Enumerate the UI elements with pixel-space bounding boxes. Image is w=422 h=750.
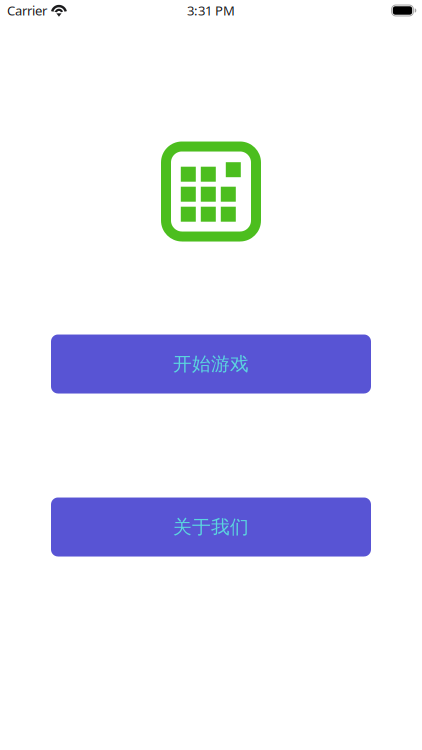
staticText: Carrier — [7, 2, 47, 19]
button[interactable]: 关于我们 — [51, 497, 371, 556]
button[interactable]: 开始游戏 — [51, 334, 371, 393]
staticText: 关于我们 — [173, 515, 249, 539]
staticText: 3:31 PM — [187, 2, 235, 19]
staticText: 开始游戏 — [173, 352, 249, 376]
